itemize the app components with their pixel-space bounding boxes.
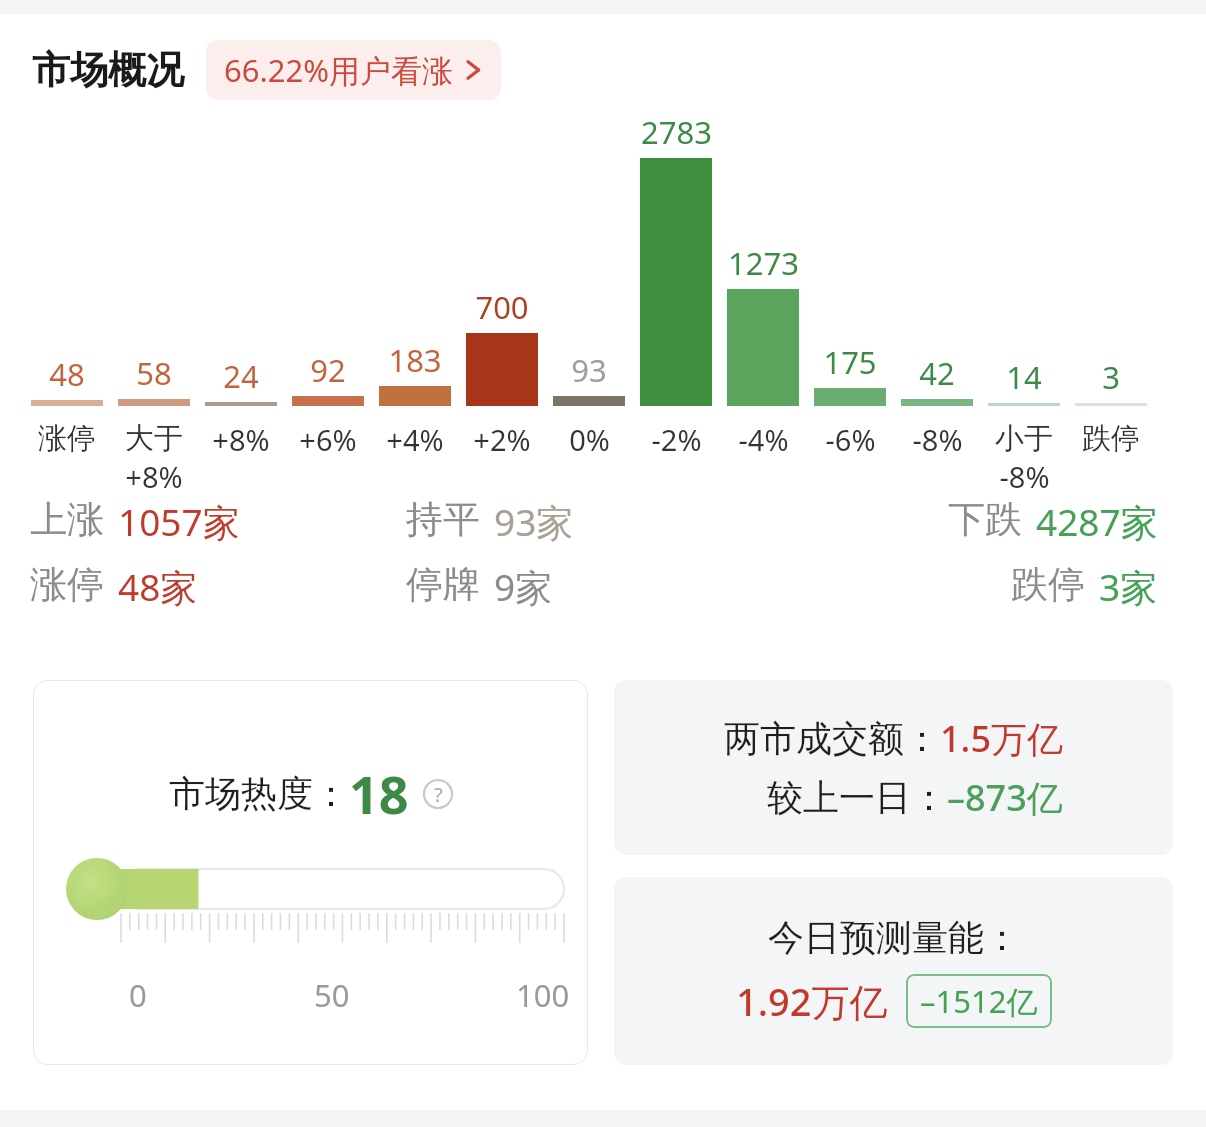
staticText: 较上一日： bbox=[767, 775, 947, 820]
staticText: 1057家 bbox=[118, 496, 240, 547]
staticText: +2% bbox=[473, 420, 531, 459]
staticText: 93家 bbox=[494, 496, 574, 547]
staticText: 175 bbox=[823, 341, 877, 383]
button[interactable]: 两市成交额： bbox=[614, 680, 1173, 855]
staticText: -4% bbox=[738, 420, 789, 459]
staticText: –1512亿 bbox=[920, 980, 1038, 1022]
button[interactable]: 市场热度： bbox=[33, 680, 588, 1065]
staticText: +4% bbox=[386, 420, 444, 459]
staticText: 涨停 bbox=[38, 420, 96, 457]
staticText: 2783 bbox=[641, 111, 712, 153]
staticText: 183 bbox=[388, 339, 442, 381]
staticText: 涨停 bbox=[30, 561, 104, 608]
button[interactable]: 今日预测量能： bbox=[614, 877, 1173, 1065]
staticText: 市场概况 bbox=[32, 46, 184, 94]
staticText: 市场热度： bbox=[169, 771, 349, 816]
button[interactable]: 66.22%用户看涨 bbox=[206, 40, 501, 100]
staticText: ? bbox=[434, 781, 443, 808]
staticText: +6% bbox=[299, 420, 357, 459]
staticText: 上涨 bbox=[30, 496, 104, 543]
staticText: 两市成交额： bbox=[724, 716, 940, 761]
staticText: 1273 bbox=[728, 242, 799, 284]
staticText: 3家 bbox=[1099, 561, 1158, 612]
staticText: 今日预测量能： bbox=[768, 915, 1020, 960]
staticText: 24 bbox=[223, 355, 259, 397]
staticText: 58 bbox=[136, 352, 172, 394]
staticText: 4287家 bbox=[1036, 496, 1158, 547]
staticText: 下跌 bbox=[948, 496, 1022, 543]
staticText: 100 bbox=[516, 974, 570, 1016]
staticText: 1.92万亿 bbox=[736, 975, 888, 1027]
staticText: 停牌 bbox=[406, 561, 480, 608]
staticText: 48 bbox=[49, 353, 85, 395]
staticText: -8% bbox=[912, 420, 963, 459]
staticText: 18 bbox=[349, 758, 409, 829]
staticText: 42 bbox=[919, 352, 955, 394]
staticText: 0 bbox=[129, 974, 147, 1016]
staticText: 大于 bbox=[125, 420, 183, 457]
staticText: 3 bbox=[1102, 356, 1120, 398]
staticText: 1.5万亿 bbox=[940, 714, 1063, 763]
staticText: 93 bbox=[571, 349, 607, 391]
staticText: -2% bbox=[651, 420, 702, 459]
staticText: 跌停 bbox=[1082, 420, 1140, 457]
staticText: 50 bbox=[314, 974, 350, 1016]
staticText: 700 bbox=[475, 286, 529, 328]
staticText: +8% bbox=[125, 457, 183, 490]
staticText: 小于 bbox=[995, 420, 1053, 457]
staticText: 14 bbox=[1006, 356, 1042, 398]
staticText: 48家 bbox=[118, 561, 198, 612]
button[interactable]: 帮助 bbox=[423, 779, 453, 809]
staticText: +8% bbox=[212, 420, 270, 459]
staticText: 66.22%用户看涨 bbox=[224, 49, 453, 91]
staticText: -6% bbox=[825, 420, 876, 459]
staticText: 9家 bbox=[494, 561, 553, 612]
staticText: 0% bbox=[569, 420, 610, 459]
staticText: –873亿 bbox=[947, 773, 1063, 822]
staticText: 持平 bbox=[406, 496, 480, 543]
staticText: 92 bbox=[310, 349, 346, 391]
staticText: -8% bbox=[999, 457, 1050, 490]
staticText: 跌停 bbox=[1011, 561, 1085, 608]
